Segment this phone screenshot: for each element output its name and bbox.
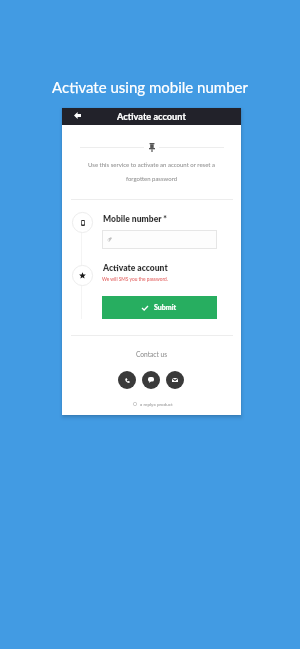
button[interactable]: Email us: [166, 371, 184, 389]
staticText: Submit: [154, 303, 177, 312]
button[interactable]: [102, 230, 217, 249]
button[interactable]: Submit: [102, 296, 217, 319]
button[interactable]: Call us: [118, 371, 136, 389]
button[interactable]: Chat with us: [142, 371, 160, 389]
staticText: Contact us: [62, 350, 241, 358]
staticText: Mobile number *: [103, 214, 167, 224]
staticText: Activate using mobile number: [0, 78, 300, 96]
button[interactable]: Back: [69, 107, 86, 124]
staticText: Activate account: [117, 111, 186, 122]
staticText: Use this service to activate an account …: [62, 161, 241, 182]
staticText: Activate account: [103, 263, 168, 273]
staticText: a replyx product: [140, 401, 173, 407]
staticText: We will SMS you the password.: [102, 276, 168, 282]
